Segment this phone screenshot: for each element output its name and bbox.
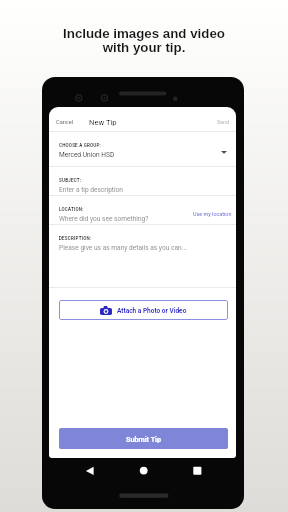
staticText: Use my location xyxy=(193,211,232,217)
button[interactable]: Attach a Photo or Video xyxy=(59,300,228,320)
staticText: Where did you see something? xyxy=(59,215,149,223)
button[interactable]: Submit Tip xyxy=(59,428,228,449)
staticText: Include images and video with your tip. xyxy=(63,26,225,55)
staticText: CHOOSE A GROUP: xyxy=(59,143,102,148)
staticText: SUBJECT: xyxy=(59,178,82,183)
staticText: DESCRIPTION: xyxy=(59,236,92,241)
staticText: Attach a Photo or Video xyxy=(117,307,187,315)
button[interactable]: DESCRIPTION: xyxy=(49,225,236,287)
staticText: Send xyxy=(217,119,230,125)
button[interactable]: LOCATION: xyxy=(49,196,149,223)
button[interactable]: Cancel xyxy=(53,115,77,130)
staticText: LOCATION: xyxy=(59,207,84,212)
staticText: Enter a tip description xyxy=(59,186,124,194)
staticText: Submit Tip xyxy=(126,435,162,443)
staticText: New Tip xyxy=(89,118,117,127)
staticText: Merced Union HSD xyxy=(59,151,115,159)
staticText: Cancel xyxy=(56,119,74,126)
staticText: Please give us as many details as you ca… xyxy=(59,244,187,252)
button[interactable]: CHOOSE A GROUP: xyxy=(49,132,236,166)
button[interactable]: SUBJECT: xyxy=(49,167,236,195)
button[interactable]: Send xyxy=(214,115,233,129)
button[interactable]: Use my location xyxy=(189,209,236,219)
